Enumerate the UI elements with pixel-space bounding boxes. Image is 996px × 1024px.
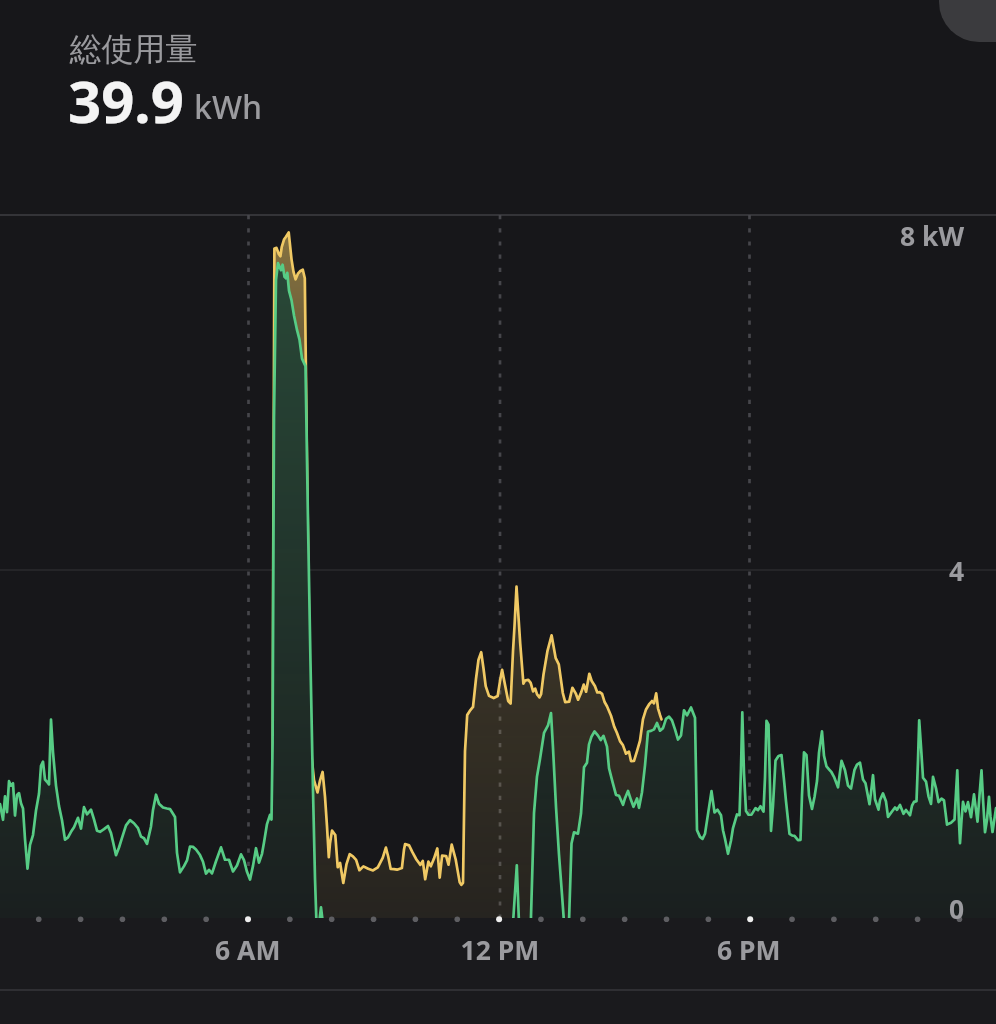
button[interactable]: 6 AM xyxy=(0,918,332,990)
button[interactable]: 12 PM xyxy=(332,918,664,990)
button[interactable]: 6 PM xyxy=(664,918,996,990)
button[interactable]: 総使用量 39.9 kWh xyxy=(0,0,996,215)
button[interactable]: 期間を選択 xyxy=(938,0,996,42)
button[interactable]: 使用量グラフ xyxy=(0,215,996,918)
